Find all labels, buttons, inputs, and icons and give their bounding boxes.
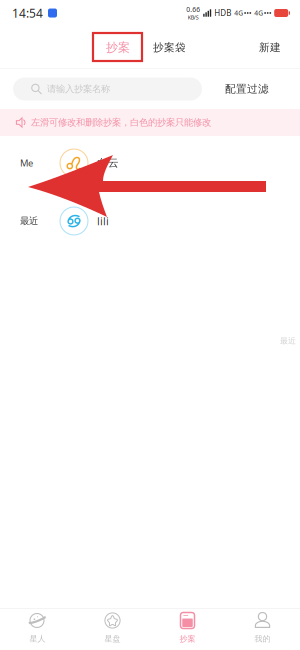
button[interactable]: 抄案 (94, 34, 142, 61)
staticText: KB/S (188, 14, 199, 21)
staticText: 抄案 (106, 40, 130, 55)
staticText: 0.66 (186, 5, 200, 14)
staticText: 请输入抄案名称 (47, 83, 110, 95)
button[interactable]: 新建 (259, 34, 281, 61)
staticText: 星人 (29, 634, 45, 644)
button[interactable]: 请输入抄案名称 (13, 77, 202, 100)
staticText: 最近 (20, 215, 38, 227)
staticText: 4G (254, 9, 263, 17)
staticText: 抄案袋 (153, 41, 186, 54)
button[interactable]: 抄案袋 (153, 34, 186, 61)
staticText: 4G (234, 9, 243, 17)
staticText: 左滑可修改和删除抄案，白色的抄案只能修改 (31, 117, 211, 128)
staticText: 14:54 (12, 5, 43, 21)
button[interactable]: 配置过滤 (225, 82, 269, 95)
button[interactable]: 星盘 (75, 608, 150, 650)
staticText: Me (20, 157, 33, 169)
button[interactable]: 星人 (0, 608, 75, 650)
button[interactable]: 抄案 (150, 608, 225, 650)
staticText: 新建 (259, 41, 281, 54)
staticText: 配置过滤 (225, 82, 269, 95)
staticText: lili (97, 214, 109, 228)
staticText: HDB (214, 8, 231, 18)
button[interactable]: 我的 (225, 608, 300, 650)
staticText: 最近 (280, 336, 296, 346)
staticText: 抄案 (179, 634, 195, 644)
staticText: 星盘 (104, 634, 120, 644)
staticText: 白云 (97, 156, 119, 169)
staticText: 我的 (254, 634, 270, 644)
button[interactable]: 最近 (0, 194, 300, 252)
button[interactable]: Me (0, 136, 300, 194)
